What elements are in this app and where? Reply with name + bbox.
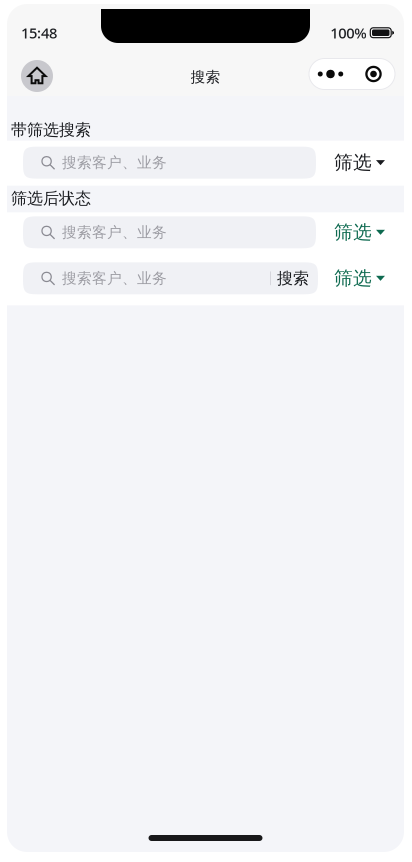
staticText: 筛选后状态 xyxy=(11,189,91,208)
staticText: 搜索客户、业务 xyxy=(62,154,167,172)
staticText: 搜索客户、业务 xyxy=(62,269,167,287)
staticText: 筛选 xyxy=(334,221,372,244)
button[interactable]: More options xyxy=(309,58,395,89)
button[interactable]: 搜索 xyxy=(270,268,318,288)
staticText: 100% xyxy=(330,23,366,42)
button[interactable]: 筛选 xyxy=(334,216,385,248)
staticText: 搜索客户、业务 xyxy=(62,223,167,241)
staticText: 筛选 xyxy=(334,267,372,290)
staticText: 搜索 xyxy=(277,268,309,288)
staticText: 筛选 xyxy=(334,151,372,174)
staticText: 带筛选搜索 xyxy=(11,120,91,140)
staticText: 15:48 xyxy=(21,23,57,42)
button[interactable]: 筛选 xyxy=(334,262,385,294)
staticText: 搜索 xyxy=(190,68,220,86)
button[interactable]: 筛选 xyxy=(334,147,385,179)
button[interactable]: Home xyxy=(17,54,57,94)
